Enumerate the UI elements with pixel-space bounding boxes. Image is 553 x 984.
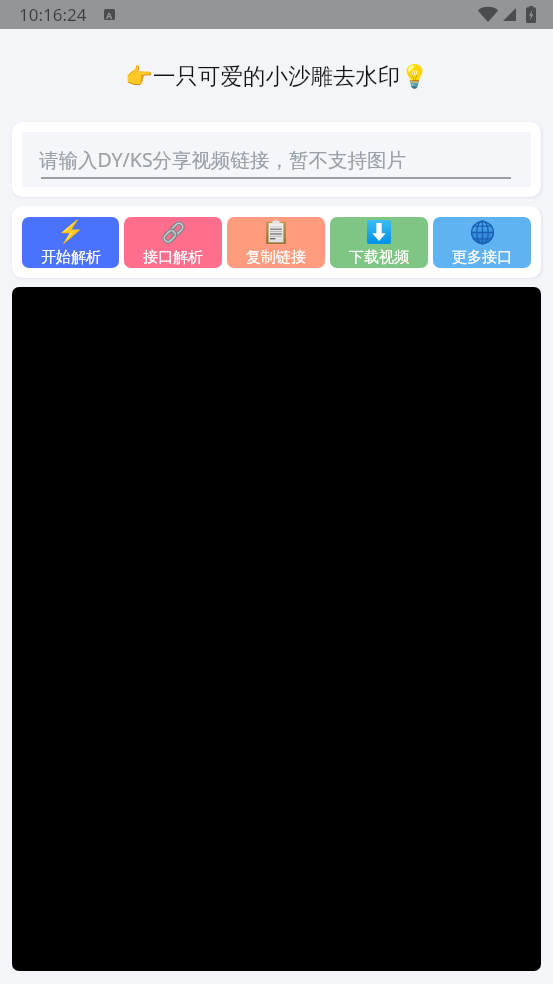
button[interactable]: ⚡ <box>22 217 119 268</box>
staticText: 10:16:24 <box>19 3 87 26</box>
staticText: 开始解析 <box>41 248 101 267</box>
staticText: A <box>106 9 113 20</box>
button[interactable]: 接口解析 <box>124 217 222 268</box>
staticText: 接口解析 <box>143 248 203 267</box>
button[interactable]: 复制链接 <box>227 217 325 268</box>
other: Mobile signal <box>503 8 516 21</box>
staticText: 复制链接 <box>246 248 306 267</box>
staticText: ⚡ <box>57 219 85 245</box>
staticText: 请输入DY/KS分享视频链接，暂不支持图片 <box>39 146 407 173</box>
other: Battery charging <box>526 6 536 23</box>
button[interactable]: 下载视频 <box>330 217 428 268</box>
button[interactable]: 更多接口 <box>433 217 531 268</box>
staticText: 👉️一只可爱的小沙雕去水印💡 <box>125 62 429 90</box>
staticText: 更多接口 <box>452 248 512 267</box>
staticText: 下载视频 <box>349 248 409 267</box>
other: App notification <box>104 9 115 20</box>
other: Wi-Fi <box>478 7 498 22</box>
button[interactable]: 视频链接输入框 <box>22 132 531 187</box>
